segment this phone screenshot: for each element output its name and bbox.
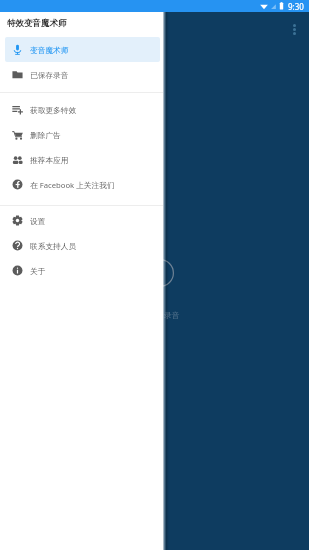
button[interactable]: 设置 (5, 208, 160, 233)
button[interactable]: 关于 (5, 258, 160, 283)
staticText: 删除广告 (30, 131, 61, 141)
staticText: 已保存录音 (30, 71, 69, 81)
button[interactable]: 联系支持人员 (5, 233, 160, 258)
button[interactable]: More options (288, 23, 300, 35)
staticText: 推荐本应用 (30, 156, 69, 166)
staticText: 特效变音魔术师 (7, 18, 67, 29)
staticText: 获取更多特效 (30, 106, 77, 116)
staticText: 录音 (164, 310, 180, 320)
button[interactable]: 获取更多特效 (5, 97, 160, 122)
staticText: 9:30 (288, 1, 304, 12)
staticText: 变音魔术师 (30, 46, 69, 56)
button[interactable]: 变音魔术师 (5, 37, 160, 62)
staticText: 关于 (30, 267, 46, 277)
staticText: 在 Facebook 上关注我们 (30, 180, 115, 191)
staticText: 联系支持人员 (30, 242, 77, 252)
button[interactable]: 删除广告 (5, 122, 160, 147)
button[interactable]: 已保存录音 (5, 62, 160, 87)
button[interactable]: 在 Facebook 上关注我们 (5, 172, 160, 197)
button[interactable]: 推荐本应用 (5, 147, 160, 172)
staticText: 设置 (30, 217, 46, 227)
